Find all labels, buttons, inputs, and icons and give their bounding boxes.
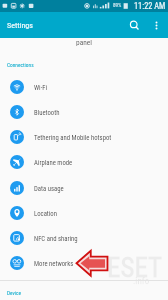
staticText: Airplane mode [34,159,73,167]
staticText: Location [34,210,57,218]
button[interactable]: More options [146,12,166,38]
staticText: 89% [113,2,122,8]
staticText: More networks [34,260,74,268]
staticText: Settings [7,21,33,30]
button[interactable]: NFC and sharing [0,225,168,250]
button[interactable]: Tethering and Mobile hotspot [0,124,168,149]
staticText: Device [7,290,22,296]
button[interactable]: Bluetooth [0,99,168,124]
button[interactable]: Data usage [0,175,168,200]
staticText: ESET [107,252,163,284]
button[interactable]: More networks [0,250,168,275]
button[interactable]: Airplane mode [0,149,168,174]
staticText: NFC and sharing [34,235,78,243]
staticText: 11:22 AM [134,1,166,11]
staticText: .info [133,276,150,287]
button[interactable]: Search [124,12,144,38]
staticText: Data usage [34,185,64,193]
staticText: Bluetooth [34,109,60,117]
button[interactable]: Location [0,200,168,225]
staticText: Connections [7,62,34,68]
staticText: Wi-Fi [34,84,48,92]
button[interactable]: Wi-Fi [0,74,168,99]
staticText: Tethering and Mobile hotspot [34,134,112,142]
staticText: panel [76,38,92,47]
